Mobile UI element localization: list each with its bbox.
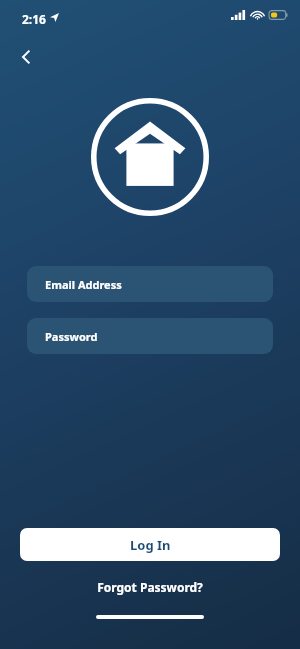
staticText: 2:16 xyxy=(22,11,46,27)
button[interactable]: Log In xyxy=(20,528,280,561)
staticText: Password xyxy=(45,329,98,344)
button[interactable]: Password xyxy=(27,318,273,354)
staticText: Forgot Password? xyxy=(97,579,203,595)
staticText: Log In xyxy=(130,536,171,554)
button[interactable]: Back xyxy=(10,40,44,74)
staticText: Email Address xyxy=(45,277,122,292)
button[interactable]: Forgot Password? xyxy=(0,579,300,595)
button[interactable]: Email Address xyxy=(27,266,273,302)
